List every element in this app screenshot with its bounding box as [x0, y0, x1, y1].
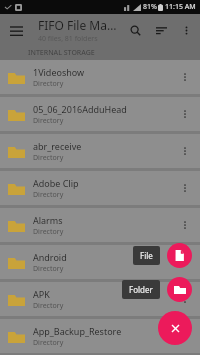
button[interactable]: Item options [174, 66, 196, 88]
staticText: INTERNAL STORAGE [28, 48, 95, 58]
staticText: Directory [33, 79, 64, 89]
staticText: Directory [33, 227, 64, 237]
staticText: File [140, 250, 153, 261]
staticText: Directory [33, 301, 64, 311]
button[interactable]: Search [122, 17, 148, 43]
button[interactable]: abr_receive [0, 134, 200, 168]
staticText: 40 files, 81 folders [38, 34, 98, 44]
staticText: Alarms [33, 214, 63, 226]
staticText: App_Backup_Restore [33, 325, 122, 337]
staticText: APK [33, 288, 50, 300]
staticText: 05_06_2016AdduHead [33, 103, 127, 115]
staticText: 11:15 AM [165, 2, 196, 12]
button[interactable]: Item options [174, 140, 196, 162]
button[interactable]: Item options [174, 103, 196, 125]
button[interactable]: Item options [174, 288, 196, 310]
button[interactable]: Item options [174, 214, 196, 236]
staticText: abr_receive [33, 140, 82, 152]
button[interactable]: App_Backup_Restore [0, 319, 200, 353]
button[interactable]: Open navigation drawer [0, 14, 32, 46]
staticText: FIFO File Manager [38, 17, 122, 33]
staticText: Directory [33, 264, 64, 274]
button[interactable]: Item options [174, 251, 196, 273]
button[interactable]: File [133, 246, 160, 265]
staticText: Android [33, 251, 67, 263]
staticText: Directory [33, 153, 64, 163]
button[interactable]: Folder [167, 277, 192, 302]
button[interactable]: Android [0, 245, 200, 279]
staticText: Adobe Clip [33, 177, 79, 189]
staticText: 1Videoshow [33, 66, 85, 78]
staticText: 81% [143, 2, 157, 12]
button[interactable]: Sort [148, 17, 174, 43]
button[interactable]: Adobe Clip [0, 171, 200, 205]
button[interactable]: Item options [174, 177, 196, 199]
staticText: Directory [33, 116, 64, 126]
button[interactable]: File [167, 243, 192, 268]
button[interactable]: 1Videoshow [0, 60, 200, 94]
button[interactable]: Folder [122, 280, 160, 299]
staticText: Folder [129, 284, 153, 295]
staticText: Directory [33, 338, 64, 348]
button[interactable]: More options [174, 18, 198, 42]
button[interactable]: Close menu [158, 311, 192, 345]
button[interactable]: APK [0, 282, 200, 316]
button[interactable]: Alarms [0, 208, 200, 242]
staticText: Directory [33, 190, 64, 200]
button[interactable]: Item options [174, 325, 196, 347]
button[interactable]: 05_06_2016AdduHead [0, 97, 200, 131]
